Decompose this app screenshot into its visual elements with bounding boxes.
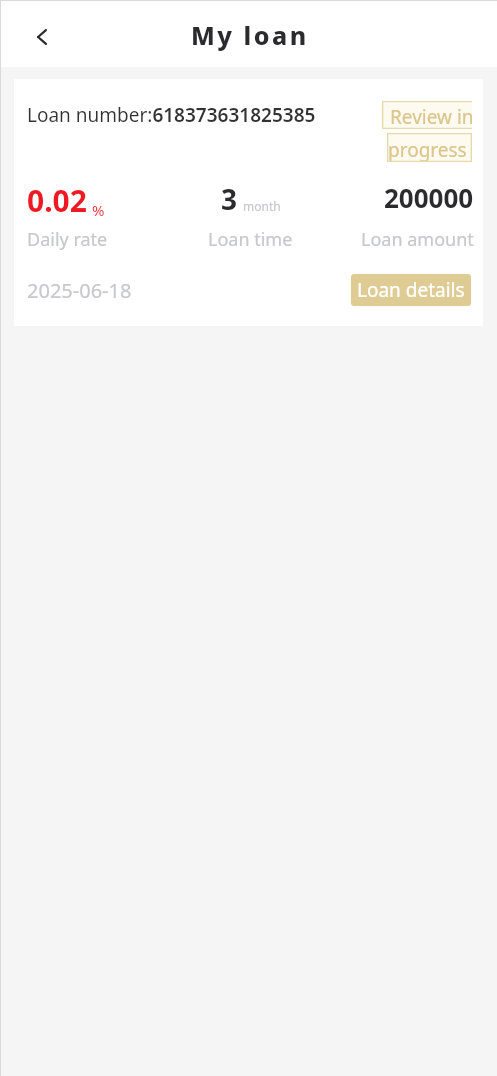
button[interactable]: Loan details <box>351 274 471 306</box>
staticText: month <box>243 198 281 214</box>
staticText: Daily rate <box>27 227 108 252</box>
button[interactable]: Review in <box>382 101 472 162</box>
staticText: 0.02 <box>27 180 87 221</box>
staticText: My loan <box>191 18 309 52</box>
staticText: Loan time <box>208 227 293 252</box>
staticText: Loan details <box>357 277 465 303</box>
staticText: Loan amount <box>361 227 474 252</box>
staticText: % <box>92 200 105 220</box>
button[interactable]: Loan number:618373631825385 <box>14 79 483 326</box>
staticText: 2025-06-18 <box>27 277 132 304</box>
button[interactable]: Back <box>0 0 68 67</box>
staticText: 200000 <box>384 180 474 215</box>
staticText: 3 <box>221 180 238 218</box>
staticText: progress <box>388 137 467 163</box>
staticText: Review in <box>390 104 474 130</box>
staticText: Loan number:618373631825385 <box>27 102 316 128</box>
